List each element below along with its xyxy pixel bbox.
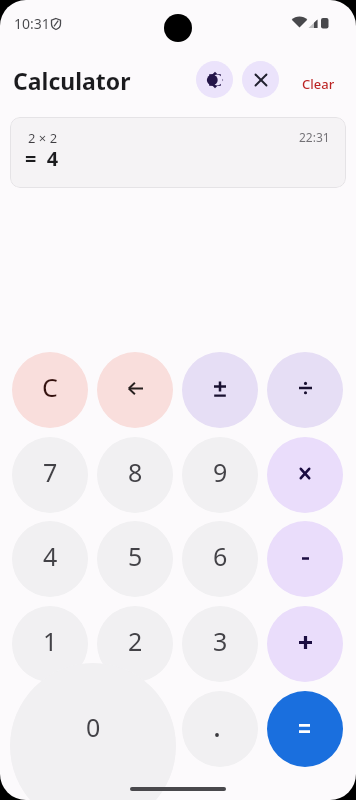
staticText: C bbox=[42, 370, 58, 404]
button[interactable] bbox=[267, 352, 343, 428]
button[interactable] bbox=[196, 61, 233, 98]
button[interactable]: 2 bbox=[97, 606, 173, 682]
button[interactable] bbox=[182, 691, 258, 767]
staticText: Calculator bbox=[13, 65, 131, 96]
button[interactable]: 8 bbox=[97, 437, 173, 513]
button[interactable]: 2 × 2 bbox=[10, 117, 346, 188]
staticText: 3 bbox=[213, 624, 228, 658]
button[interactable]: C bbox=[12, 352, 88, 428]
staticText: 5 bbox=[128, 539, 143, 573]
button[interactable]: 3 bbox=[182, 606, 258, 682]
button[interactable] bbox=[267, 691, 343, 767]
staticText: 2 bbox=[128, 624, 143, 658]
button[interactable] bbox=[267, 521, 343, 597]
button[interactable] bbox=[242, 61, 279, 98]
button[interactable] bbox=[267, 437, 343, 513]
staticText: 9 bbox=[213, 455, 228, 489]
staticText: 0 bbox=[86, 710, 101, 744]
button[interactable]: 9 bbox=[182, 437, 258, 513]
staticText: = 4 bbox=[25, 145, 59, 172]
button[interactable]: 0 bbox=[10, 663, 176, 800]
staticText: 1 bbox=[43, 624, 58, 658]
staticText: 7 bbox=[43, 455, 58, 489]
staticText: 4 bbox=[43, 539, 58, 573]
button[interactable]: 6 bbox=[182, 521, 258, 597]
staticText: 2 × 2 bbox=[28, 129, 58, 147]
button[interactable]: 5 bbox=[97, 521, 173, 597]
button[interactable] bbox=[97, 352, 173, 428]
staticText: 10:31 bbox=[14, 14, 50, 33]
button[interactable] bbox=[182, 352, 258, 428]
button[interactable]: 1 bbox=[12, 606, 88, 682]
staticText: 8 bbox=[128, 455, 143, 489]
button[interactable]: 7 bbox=[12, 437, 88, 513]
staticText: 22:31 bbox=[299, 129, 330, 145]
button[interactable] bbox=[267, 606, 343, 682]
button[interactable]: 4 bbox=[12, 521, 88, 597]
staticText: 6 bbox=[213, 539, 228, 573]
button[interactable]: Clear bbox=[302, 75, 335, 93]
